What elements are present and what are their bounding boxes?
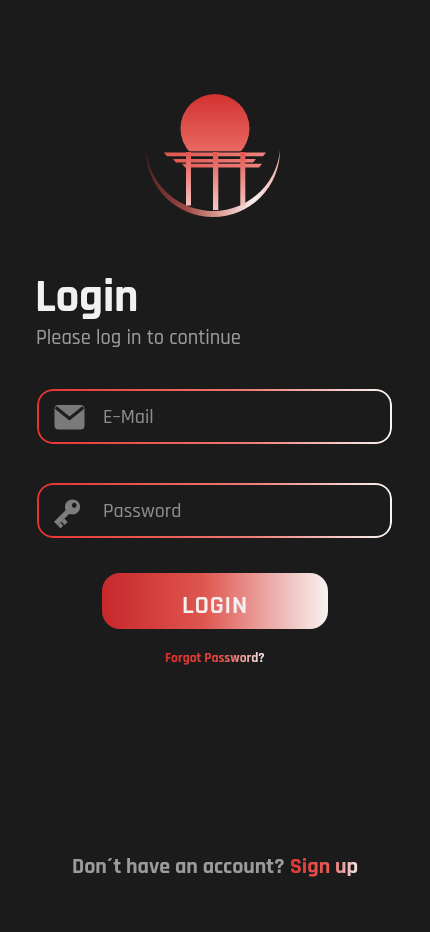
staticText: LOGIN [182,589,248,622]
staticText: Don´t have an account? [72,853,290,881]
staticText: Sign up [290,853,359,881]
staticText: Forgot Password? [165,649,265,666]
button[interactable]: Password [37,483,392,538]
button[interactable]: LOGIN [102,573,328,629]
staticText: Login [35,268,139,327]
button[interactable]: Forgot Password? [159,645,271,670]
staticText: Password [103,498,182,524]
button[interactable]: E–Mail [37,389,392,444]
staticText: E–Mail [103,404,154,430]
staticText: Please log in to continue [36,325,241,351]
button[interactable]: Sign up [290,853,359,881]
